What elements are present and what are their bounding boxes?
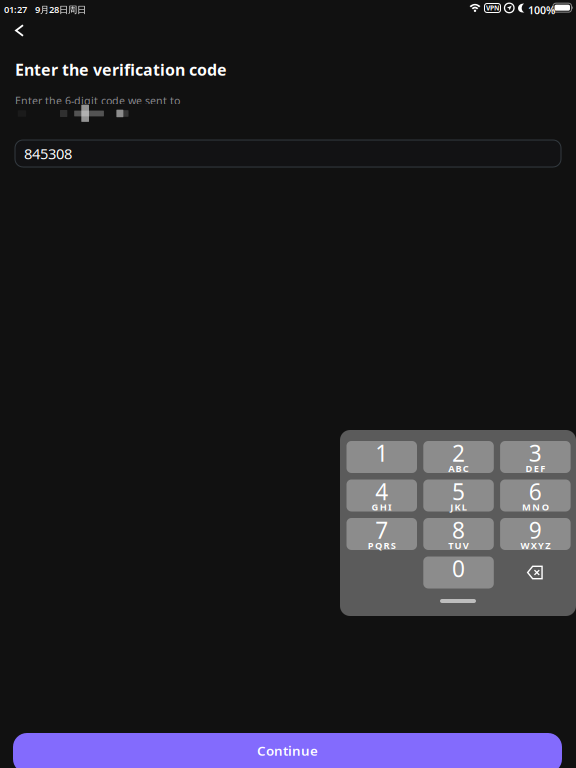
- staticText: MNO: [522, 501, 549, 513]
- staticText: 9: [529, 515, 542, 545]
- staticText: ABC: [448, 462, 469, 475]
- staticText: Enter the verification code: [15, 59, 227, 80]
- button[interactable]: 7: [346, 518, 417, 550]
- button[interactable]: 3: [500, 441, 571, 473]
- button[interactable]: 8: [423, 518, 494, 550]
- staticText: 0: [452, 553, 465, 583]
- staticText: WXYZ: [520, 539, 550, 552]
- staticText: Continue: [257, 742, 318, 759]
- staticText: 1: [375, 438, 388, 468]
- button[interactable]: 4: [346, 479, 417, 511]
- staticText: 3: [529, 438, 542, 468]
- staticText: 5: [452, 476, 465, 506]
- button[interactable]: 2: [423, 441, 494, 473]
- staticText: PQRS: [368, 539, 396, 552]
- button[interactable]: Back: [0, 16, 37, 45]
- staticText: 01:27: [4, 3, 27, 16]
- button[interactable]: 5: [423, 479, 494, 511]
- staticText: JKL: [450, 501, 467, 513]
- staticText: 6: [529, 476, 542, 506]
- staticText: VPN: [486, 4, 499, 12]
- staticText: 8: [452, 515, 465, 545]
- button[interactable]: 6: [500, 479, 571, 511]
- staticText: DEF: [526, 462, 545, 475]
- staticText: 2: [452, 438, 465, 468]
- staticText: 845308: [24, 144, 72, 163]
- staticText: 7: [375, 515, 388, 545]
- staticText: GHI: [371, 501, 392, 513]
- staticText: TUV: [448, 539, 469, 552]
- staticText: 100%: [528, 3, 555, 17]
- button[interactable]: Continue: [13, 733, 562, 768]
- button[interactable]: 9: [500, 518, 571, 550]
- staticText: Enter the 6-digit code we sent to: [15, 93, 180, 108]
- button[interactable]: 1: [346, 441, 417, 473]
- button[interactable]: 0: [423, 556, 494, 588]
- staticText: 4: [375, 476, 388, 506]
- staticText: 9月28日周日: [35, 3, 86, 16]
- button[interactable]: Delete: [500, 556, 571, 588]
